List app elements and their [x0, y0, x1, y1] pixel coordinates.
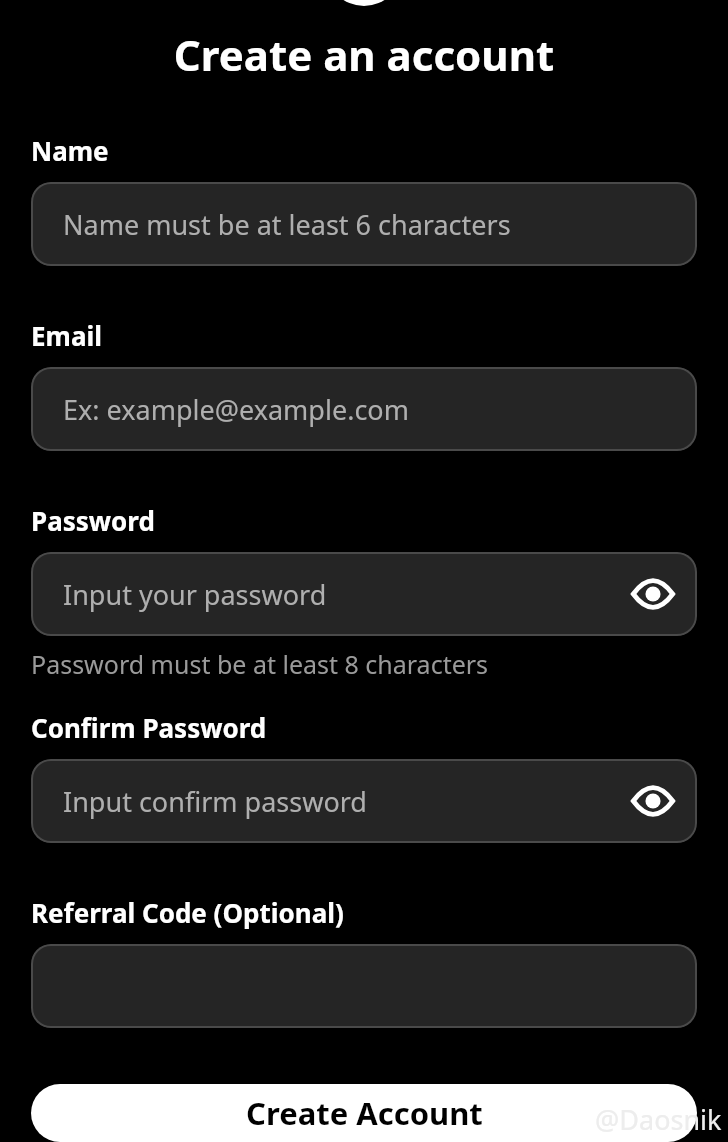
button[interactable]: Name must be at least 6 characters [31, 182, 697, 266]
button[interactable] [31, 944, 697, 1028]
staticText: Input your password [63, 576, 327, 613]
staticText: Email [31, 318, 103, 353]
staticText: Password must be at least 8 characters [31, 647, 489, 681]
button[interactable]: Ex: example@example.com [31, 367, 697, 451]
staticText: Ex: example@example.com [63, 391, 409, 428]
button[interactable]: Input confirm password [31, 759, 697, 843]
staticText: Name [31, 133, 109, 168]
staticText: Name must be at least 6 characters [63, 206, 511, 243]
staticText: @Daosnik [595, 1101, 722, 1138]
staticText: Confirm Password [31, 710, 267, 745]
staticText: Referral Code (Optional) [31, 895, 344, 930]
button[interactable]: Show confirm password [625, 773, 681, 829]
button[interactable]: Show password [625, 566, 681, 622]
button[interactable]: Input your password [31, 552, 697, 636]
staticText: Input confirm password [63, 783, 367, 820]
button[interactable]: Create Account [31, 1084, 697, 1142]
staticText: Password [31, 503, 155, 538]
staticText: Create an account [31, 26, 697, 83]
staticText: Create Account [246, 1092, 483, 1134]
